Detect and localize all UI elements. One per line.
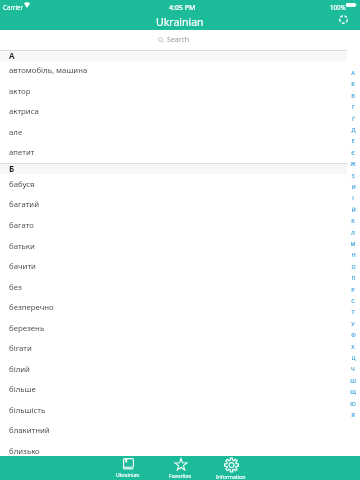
button[interactable]: без <box>0 277 360 298</box>
staticText: без <box>9 282 22 293</box>
staticText: близько <box>9 446 40 457</box>
button[interactable]: безперечно <box>0 297 360 318</box>
staticText: але <box>9 127 23 138</box>
button[interactable]: близько <box>0 441 360 462</box>
staticText: блакитний <box>9 425 50 436</box>
staticText: О <box>351 263 356 270</box>
staticText: Ю <box>350 400 356 407</box>
button[interactable]: Information <box>207 456 255 480</box>
staticText: Т <box>351 308 355 315</box>
staticText: 100% <box>330 3 346 11</box>
staticText: багатий <box>9 199 39 210</box>
staticText: Ukrainian <box>156 15 204 29</box>
button[interactable]: блакитний <box>0 420 360 441</box>
staticText: білий <box>9 364 30 375</box>
staticText: З <box>351 172 355 179</box>
staticText: 4:05 PM <box>169 3 196 13</box>
staticText: бабуся <box>9 179 35 190</box>
staticText: Н <box>351 251 356 258</box>
staticText: А <box>9 50 15 61</box>
button[interactable]: більше <box>0 379 360 400</box>
button[interactable]: більшість <box>0 400 360 421</box>
staticText: Ц <box>351 354 356 361</box>
button[interactable]: актриса <box>0 101 360 122</box>
staticText: безперечно <box>9 302 54 313</box>
button[interactable]: але <box>0 122 360 143</box>
staticText: К <box>351 217 355 224</box>
button[interactable]: апетит <box>0 142 360 163</box>
staticText: Х <box>351 343 355 350</box>
staticText: Е <box>351 137 355 144</box>
button[interactable]: багато <box>0 215 360 236</box>
button[interactable]: Favorites <box>156 456 204 480</box>
staticText: С <box>351 297 355 304</box>
button[interactable]: березень <box>0 318 360 339</box>
button[interactable]: білий <box>0 359 360 380</box>
staticText: Ґ <box>352 115 355 122</box>
staticText: Ш <box>350 377 356 384</box>
staticText: Carrier <box>3 3 24 11</box>
staticText: багато <box>9 220 34 231</box>
staticText: більше <box>9 384 36 395</box>
staticText: В <box>351 92 355 99</box>
staticText: Ч <box>351 365 355 372</box>
button[interactable]: Refresh <box>336 14 350 30</box>
staticText: актор <box>9 86 31 97</box>
staticText: Ф <box>351 331 356 338</box>
button[interactable]: бачити <box>0 256 360 277</box>
staticText: актриса <box>9 106 39 117</box>
button[interactable]: автомобіль, машина <box>0 60 360 81</box>
staticText: Л <box>351 229 355 236</box>
staticText: У <box>351 320 355 327</box>
staticText: бачити <box>9 261 36 272</box>
staticText: Search <box>167 35 190 45</box>
button[interactable]: батьки <box>0 236 360 257</box>
staticText: П <box>351 274 356 281</box>
staticText: Й <box>351 206 356 213</box>
staticText: автомобіль, машина <box>9 65 88 76</box>
staticText: Ж <box>350 160 356 167</box>
button[interactable]: бабуся <box>0 174 360 195</box>
button[interactable]: бігати <box>0 338 360 359</box>
staticText: М <box>350 240 356 247</box>
staticText: Ukrainian <box>116 471 140 478</box>
staticText: І <box>352 194 354 201</box>
button[interactable]: актор <box>0 81 360 102</box>
staticText: березень <box>9 323 45 334</box>
staticText: Д <box>351 126 356 133</box>
staticText: Я <box>351 411 355 418</box>
button[interactable]: Ukrainian <box>104 456 152 480</box>
staticText: И <box>351 183 356 190</box>
staticText: Б <box>351 80 355 87</box>
staticText: Г <box>352 103 355 110</box>
staticText: Є <box>351 149 355 156</box>
staticText: більшість <box>9 405 46 416</box>
staticText: бігати <box>9 343 32 354</box>
staticText: батьки <box>9 241 35 252</box>
staticText: А <box>351 69 355 76</box>
staticText: Р <box>351 286 355 293</box>
button[interactable]: багатий <box>0 194 360 215</box>
staticText: Information <box>216 473 246 480</box>
staticText: Б <box>9 163 15 174</box>
staticText: Щ <box>350 388 356 395</box>
staticText: Favorites <box>169 472 192 479</box>
staticText: апетит <box>9 147 35 158</box>
